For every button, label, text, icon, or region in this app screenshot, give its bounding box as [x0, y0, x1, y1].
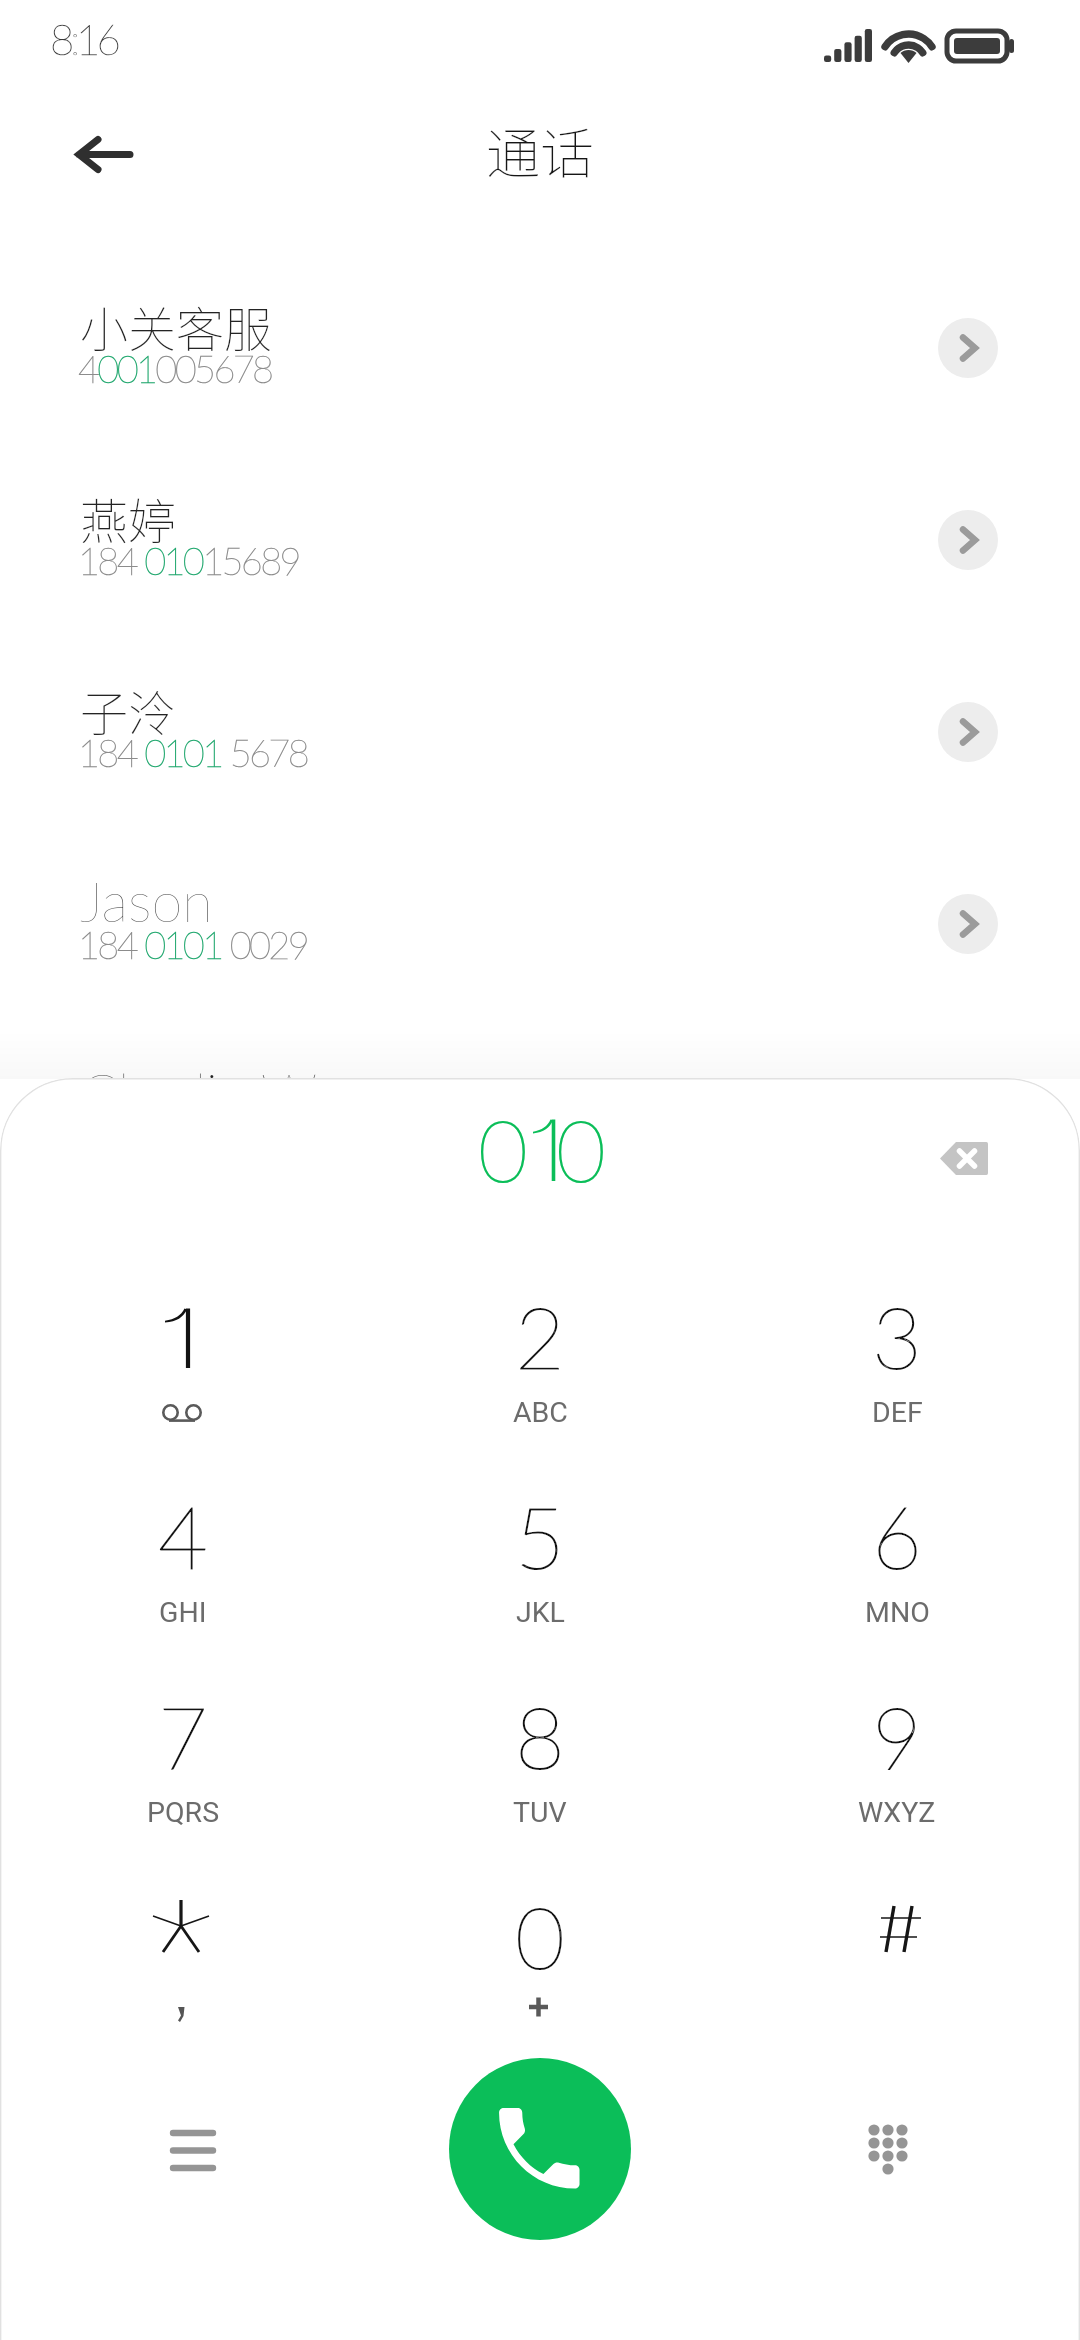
button[interactable]: 3 [727, 1284, 1067, 1480]
button[interactable]: Key 1 [13, 1284, 353, 1480]
button[interactable]: 4 [13, 1484, 353, 1680]
staticText: 3 [872, 1284, 922, 1387]
staticText: ABC [513, 1396, 568, 1429]
staticText: Jason [80, 867, 213, 934]
staticText: 184 0101 5678 [78, 729, 308, 775]
button[interactable]: Contact details [938, 510, 998, 570]
staticText: 2 [515, 1284, 565, 1387]
button[interactable]: Call [449, 2058, 631, 2240]
button[interactable]: Contact details [938, 894, 998, 954]
staticText: 0 [478, 1097, 528, 1200]
staticText: 9 [872, 1684, 922, 1787]
staticText: 小关客服 [80, 291, 273, 361]
staticText: 8:16 [50, 14, 117, 64]
button[interactable]: Key # [727, 1884, 1067, 2080]
staticText: 8 [515, 1684, 565, 1787]
staticText: MNO [865, 1596, 930, 1629]
staticText: 燕婷 [80, 483, 177, 553]
button[interactable]: 燕婷 [0, 480, 1080, 672]
button[interactable]: Keypad [829, 2109, 949, 2229]
staticText: Charlie Wu [80, 1059, 346, 1126]
staticText: DEF [872, 1396, 923, 1429]
staticText: 子泠 [80, 675, 177, 745]
button[interactable]: Contact details [938, 318, 998, 378]
button[interactable]: Jason [0, 864, 1080, 1056]
button[interactable]: 5 [370, 1484, 710, 1680]
button[interactable]: 8 [370, 1684, 710, 1880]
button[interactable]: 9 [727, 1684, 1067, 1880]
staticText: 0 [556, 1097, 606, 1200]
staticText: 4001005678 [78, 345, 272, 391]
button[interactable]: Charlie Wu [0, 1056, 1080, 1248]
staticText: GHI [159, 1596, 207, 1629]
staticText: 4 [158, 1484, 208, 1587]
button[interactable]: 0 [370, 1884, 710, 2080]
staticText: PQRS [147, 1796, 220, 1829]
staticText: 0 [515, 1884, 565, 1987]
button[interactable]: Delete [920, 1122, 1008, 1196]
staticText: JKL [516, 1596, 565, 1629]
staticText: 通话 [486, 111, 594, 189]
button[interactable]: 2 [370, 1284, 710, 1480]
button[interactable]: Back [44, 106, 164, 202]
button[interactable]: Call log [131, 2109, 251, 2229]
staticText: 5 [515, 1484, 565, 1587]
button[interactable]: 6 [727, 1484, 1067, 1680]
staticText: 184 0101 0029 [78, 921, 308, 967]
button[interactable]: Contact details [938, 702, 998, 762]
staticText: 7 [158, 1684, 208, 1787]
staticText: TUV [513, 1796, 567, 1829]
button[interactable]: 7 [13, 1684, 353, 1880]
button[interactable]: Key * [13, 1884, 353, 2080]
staticText: 6 [872, 1484, 922, 1587]
button[interactable]: 小关客服 [0, 288, 1080, 480]
staticText: 184 01015689 [78, 537, 299, 583]
button[interactable]: 子泠 [0, 672, 1080, 864]
staticText: WXYZ [858, 1796, 936, 1829]
button[interactable]: Contact details [938, 1086, 998, 1146]
